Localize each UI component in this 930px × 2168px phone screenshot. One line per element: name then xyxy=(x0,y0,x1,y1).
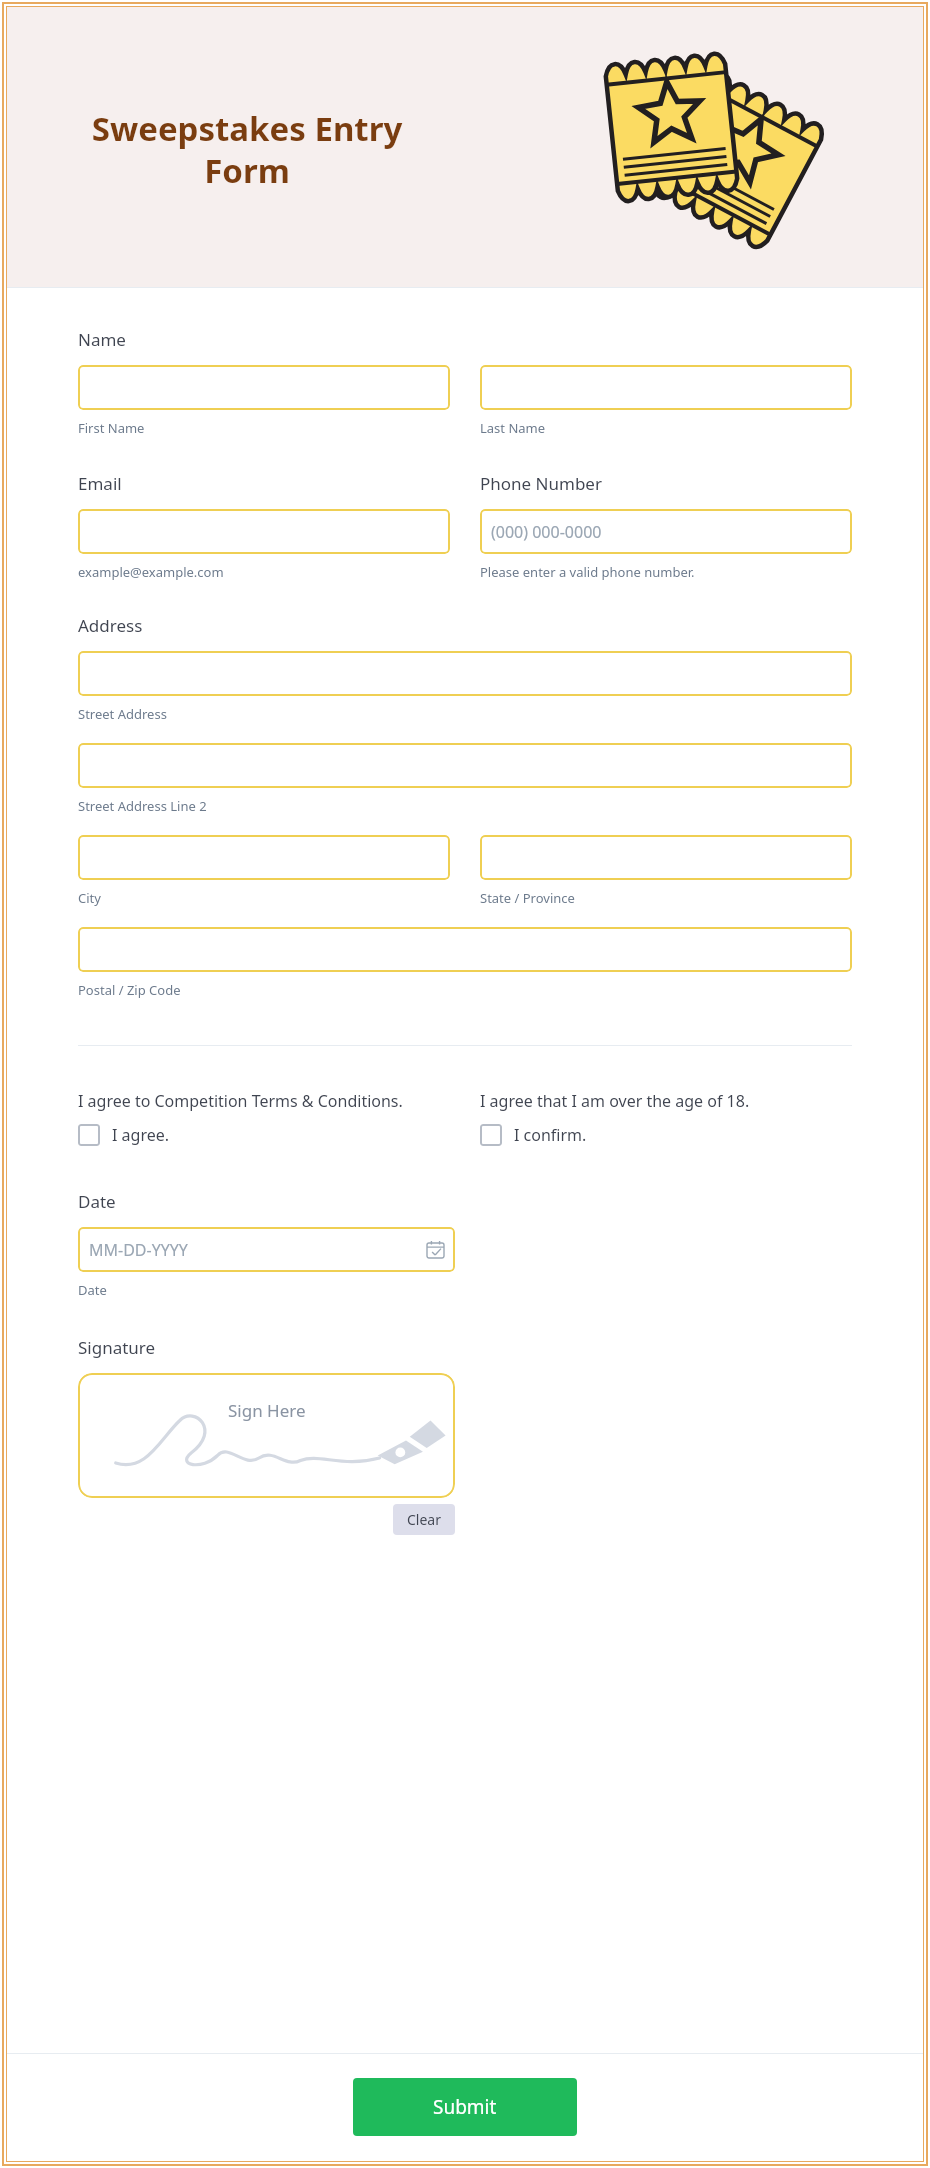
button[interactable]: Clear xyxy=(393,1504,455,1535)
staticText: Street Address Line 2 xyxy=(78,797,207,815)
button[interactable] xyxy=(78,927,852,972)
staticText: I agree to Competition Terms & Condition… xyxy=(78,1090,403,1112)
staticText: Date xyxy=(78,1190,116,1213)
staticText: MM-DD-YYYY xyxy=(89,1239,188,1261)
staticText: example@example.com xyxy=(78,563,224,581)
button[interactable] xyxy=(78,365,450,410)
staticText: Last Name xyxy=(480,419,546,437)
button[interactable] xyxy=(78,509,450,554)
button[interactable]: (000) 000-0000 xyxy=(480,509,852,554)
staticText: Sweepstakes Entry Form xyxy=(82,106,412,193)
staticText: First Name xyxy=(78,419,145,437)
button[interactable]: I confirm. xyxy=(480,1124,587,1146)
button[interactable]: Signature pad, sign here xyxy=(78,1373,455,1498)
staticText: Signature xyxy=(78,1336,156,1359)
staticText: Street Address xyxy=(78,705,167,723)
staticText: Postal / Zip Code xyxy=(78,981,181,999)
button[interactable]: Submit xyxy=(353,2078,577,2136)
button[interactable] xyxy=(480,835,852,880)
button[interactable] xyxy=(78,651,852,696)
staticText: Please enter a valid phone number. xyxy=(480,563,695,581)
staticText: Phone Number xyxy=(480,472,602,495)
staticText: Submit xyxy=(433,2094,497,2120)
staticText: State / Province xyxy=(480,889,575,907)
staticText: I agree. xyxy=(112,1124,170,1146)
staticText: Address xyxy=(78,614,143,637)
button[interactable] xyxy=(480,365,852,410)
staticText: I confirm. xyxy=(514,1124,587,1146)
button[interactable] xyxy=(78,743,852,788)
staticText: Clear xyxy=(407,1510,441,1529)
staticText: (000) 000-0000 xyxy=(491,521,602,543)
staticText: City xyxy=(78,889,101,907)
staticText: Sign Here xyxy=(228,1399,306,1422)
staticText: Date xyxy=(78,1281,107,1299)
button[interactable]: I agree. xyxy=(78,1124,170,1146)
staticText: Name xyxy=(78,328,126,351)
staticText: Email xyxy=(78,472,122,495)
button[interactable]: MM-DD-YYYY xyxy=(78,1227,455,1272)
staticText: I agree that I am over the age of 18. xyxy=(480,1090,750,1112)
button[interactable] xyxy=(78,835,450,880)
